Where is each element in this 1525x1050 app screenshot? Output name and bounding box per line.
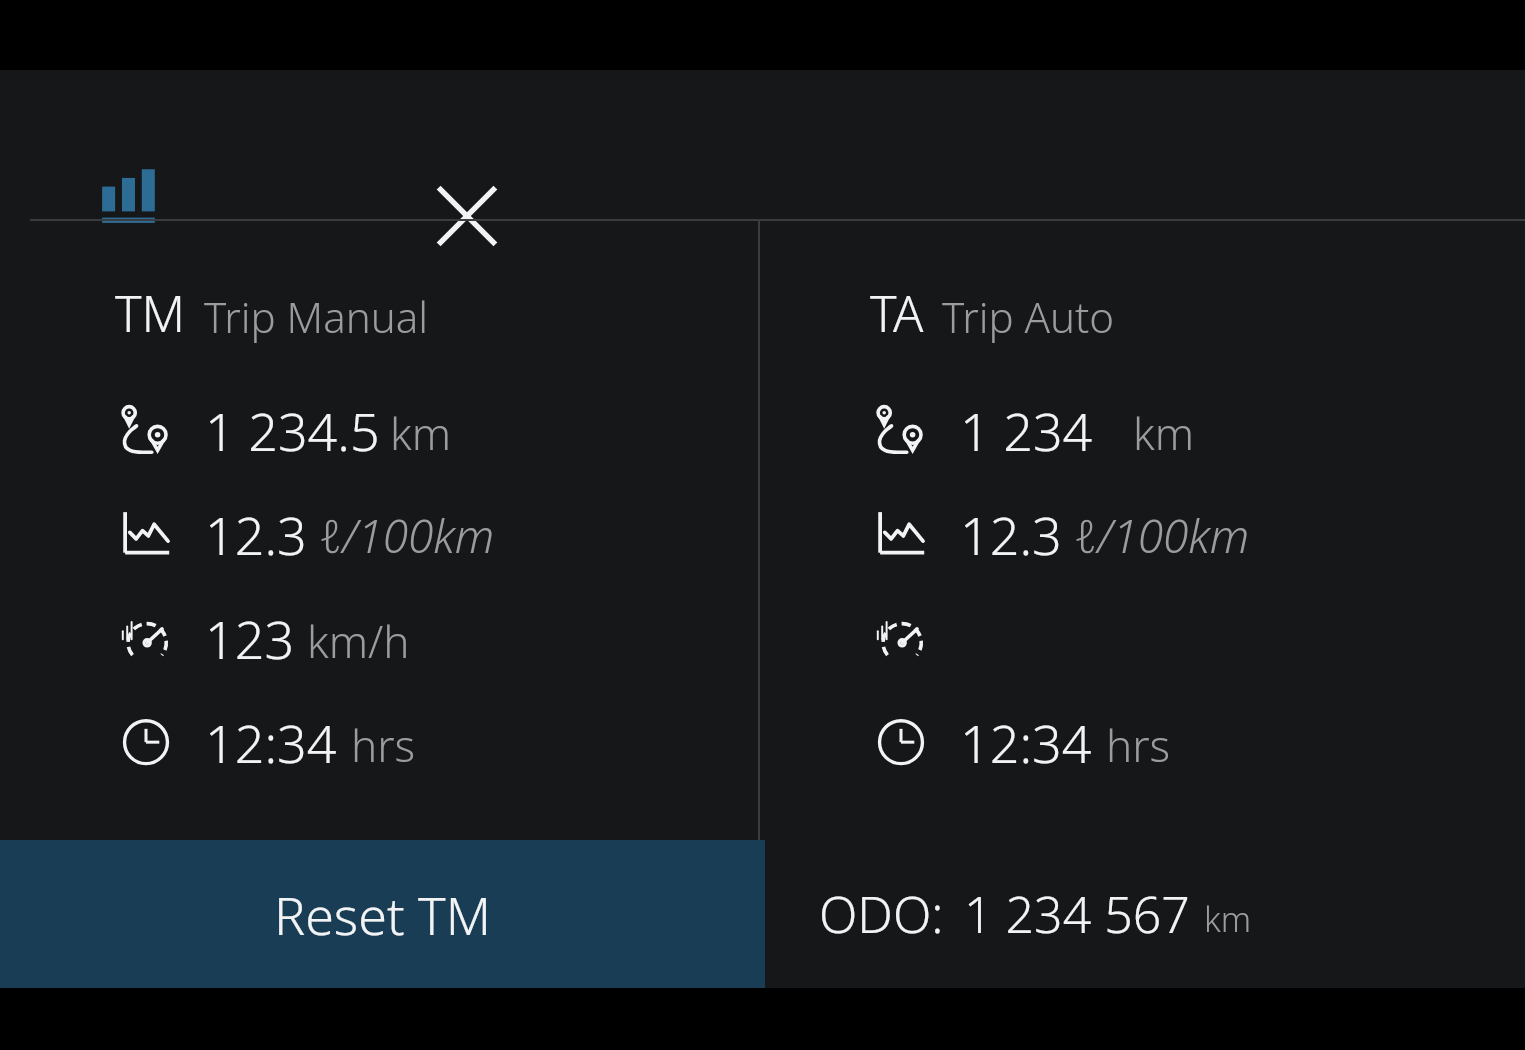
staticText: 1 234.5 bbox=[205, 395, 380, 463]
staticText: Trip Manual bbox=[204, 288, 428, 345]
other: Consumption bbox=[115, 502, 177, 564]
button[interactable]: Trip statistics bbox=[94, 168, 184, 230]
staticText: TM bbox=[115, 279, 186, 347]
staticText: 12.3 bbox=[960, 499, 1062, 567]
other: Average speed bbox=[115, 606, 177, 668]
staticText: Trip Auto bbox=[942, 288, 1115, 345]
staticText: ℓ/100km bbox=[1074, 504, 1250, 567]
button[interactable]: Close bbox=[424, 173, 510, 259]
staticText: hrs bbox=[351, 715, 416, 775]
staticText: km bbox=[1204, 896, 1252, 942]
staticText: 12:34 bbox=[960, 707, 1092, 775]
other: Average speed bbox=[870, 606, 932, 668]
staticText: 12.3 bbox=[205, 499, 307, 567]
button[interactable]: ODO: bbox=[765, 840, 1525, 988]
staticText: TA bbox=[870, 279, 924, 347]
other: Route bbox=[115, 398, 177, 460]
staticText: ℓ/100km bbox=[319, 504, 495, 567]
button[interactable]: Reset TM bbox=[0, 840, 765, 988]
other: Route bbox=[870, 398, 932, 460]
other: Duration bbox=[115, 710, 177, 772]
staticText: Reset TM bbox=[274, 879, 491, 950]
staticText: km bbox=[1133, 403, 1195, 463]
staticText: hrs bbox=[1106, 715, 1171, 775]
staticText: 123 bbox=[205, 603, 295, 671]
staticText: km bbox=[390, 403, 452, 463]
staticText: km/h bbox=[307, 611, 410, 671]
staticText: 1 234 567 bbox=[964, 880, 1190, 948]
staticText: 12:34 bbox=[205, 707, 337, 775]
staticText: ODO: bbox=[819, 880, 944, 948]
staticText: 1 234 bbox=[960, 395, 1093, 463]
other: Duration bbox=[870, 710, 932, 772]
other: Consumption bbox=[870, 502, 932, 564]
